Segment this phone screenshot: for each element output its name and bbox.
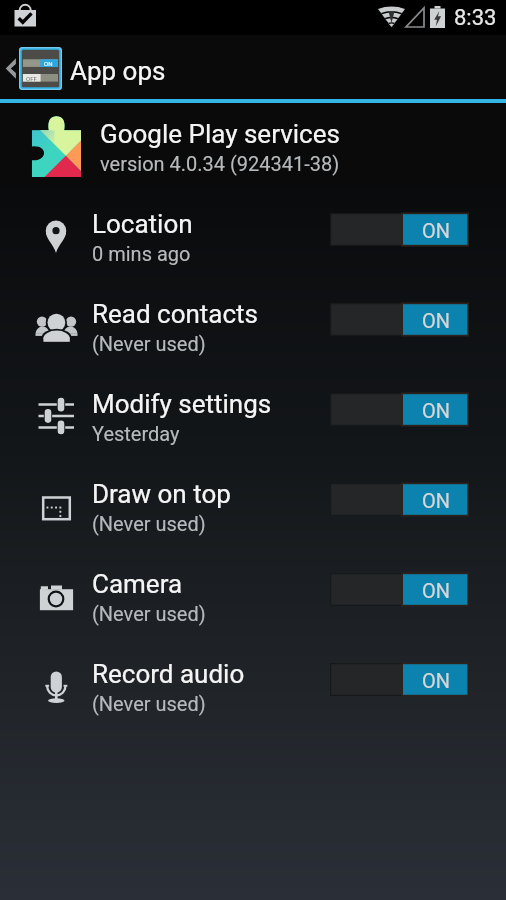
staticText: ON xyxy=(422,399,451,422)
button[interactable]: Camera xyxy=(0,544,506,634)
staticText: ON xyxy=(422,669,451,692)
staticText: ON xyxy=(422,309,451,332)
button[interactable]: Draw on top xyxy=(0,454,506,544)
staticText: ON xyxy=(422,579,451,602)
button[interactable]: Read contacts xyxy=(0,274,506,364)
staticText: Camera xyxy=(92,569,183,599)
button[interactable]: Navigate up xyxy=(0,35,62,99)
staticText: (Never used) xyxy=(92,332,206,355)
staticText: 8:33 xyxy=(454,5,497,31)
other: Navigate up xyxy=(2,35,20,99)
button[interactable]: Toggle permission on xyxy=(330,573,469,606)
staticText: Read contacts xyxy=(92,299,259,329)
staticText: Record audio xyxy=(92,659,245,689)
staticText: (Never used) xyxy=(92,692,206,715)
button[interactable]: Toggle permission on xyxy=(330,303,469,336)
staticText: Yesterday xyxy=(92,422,180,445)
staticText: ON xyxy=(422,489,451,512)
staticText: version 4.0.34 (924341-38) xyxy=(100,152,340,175)
button[interactable]: Record audio xyxy=(0,634,506,724)
staticText: ON xyxy=(44,60,53,67)
button[interactable]: Toggle permission on xyxy=(330,393,469,426)
button[interactable]: Location xyxy=(0,184,506,274)
staticText: Draw on top xyxy=(92,479,231,509)
staticText: (Never used) xyxy=(92,602,206,625)
button[interactable]: Toggle permission on xyxy=(330,483,469,516)
staticText: ON xyxy=(422,219,451,242)
staticText: Modify settings xyxy=(92,389,272,419)
staticText: App ops xyxy=(70,56,166,86)
staticText: Location xyxy=(92,209,193,239)
staticText: (Never used) xyxy=(92,512,206,535)
staticText: Google Play services xyxy=(100,119,340,149)
staticText: OFF xyxy=(26,75,37,82)
staticText: 0 mins ago xyxy=(92,242,191,265)
button[interactable]: Modify settings xyxy=(0,364,506,454)
button[interactable]: Toggle permission on xyxy=(330,663,469,696)
button[interactable]: Toggle permission on xyxy=(330,213,469,246)
